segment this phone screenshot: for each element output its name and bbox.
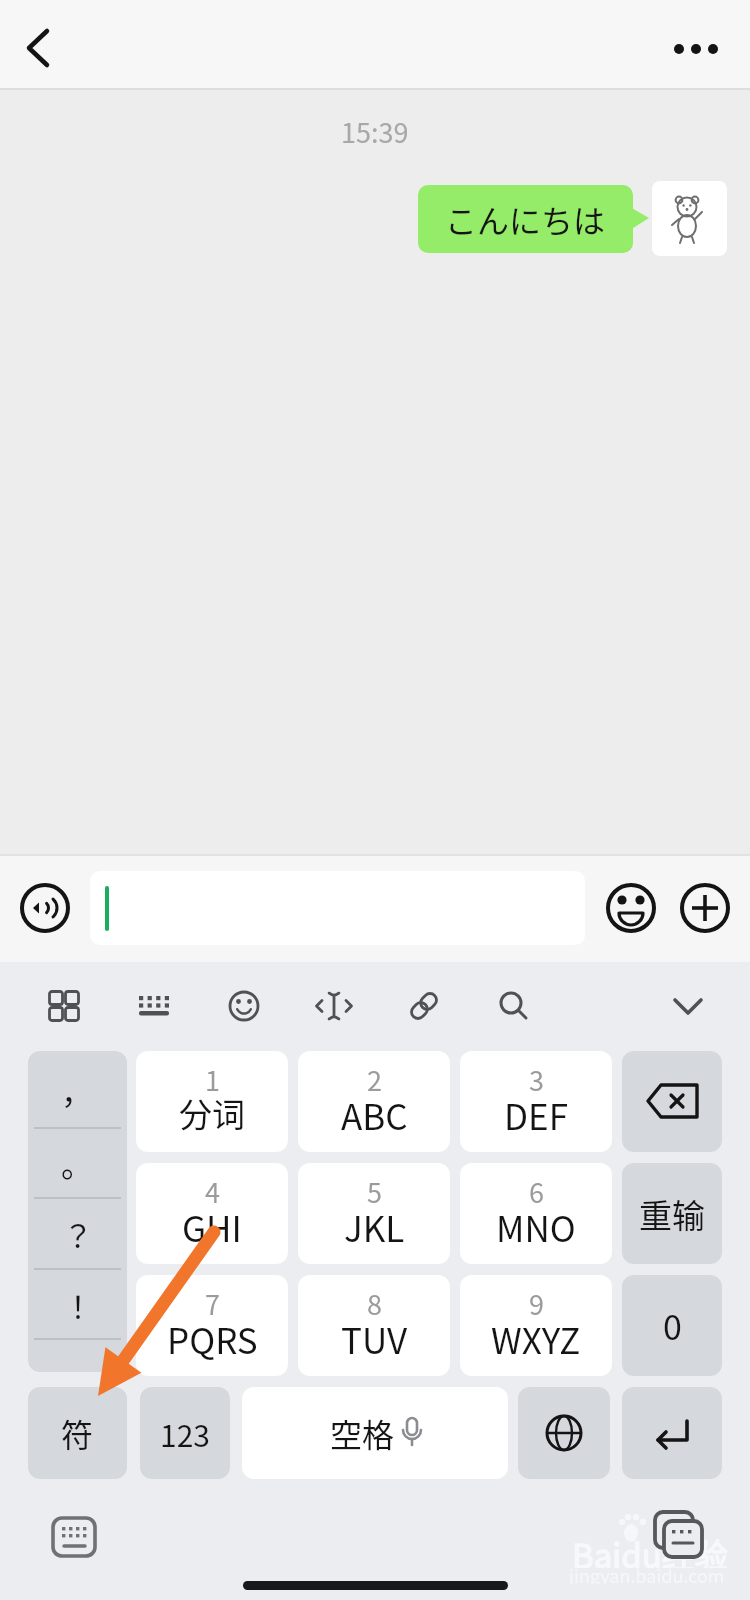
staticText: 15:39 — [341, 112, 409, 151]
staticText: 2 — [367, 1060, 382, 1096]
button[interactable] — [40, 1505, 110, 1569]
button[interactable] — [298, 1163, 450, 1264]
button[interactable] — [394, 976, 454, 1036]
button[interactable] — [10, 20, 70, 76]
staticText: こんにちは — [445, 196, 606, 242]
staticText: 8 — [367, 1284, 382, 1320]
button[interactable] — [298, 1275, 450, 1376]
staticText: 123 — [160, 1412, 210, 1455]
button[interactable] — [28, 1051, 127, 1372]
button[interactable] — [242, 1387, 508, 1479]
button[interactable]: 重输 — [622, 1163, 722, 1264]
staticText: ？ — [63, 1212, 93, 1255]
button[interactable] — [484, 976, 544, 1036]
button[interactable] — [34, 976, 94, 1036]
button[interactable] — [136, 1163, 288, 1264]
button[interactable] — [622, 1387, 722, 1479]
button[interactable] — [214, 976, 274, 1036]
staticText: 5 — [367, 1172, 382, 1208]
staticText: 9 — [529, 1284, 544, 1320]
button[interactable] — [652, 181, 727, 256]
button[interactable]: 123 — [140, 1387, 230, 1479]
staticText: 符 — [61, 1410, 94, 1456]
staticText: 7 — [205, 1284, 220, 1320]
button[interactable] — [460, 1163, 612, 1264]
button[interactable] — [136, 1275, 288, 1376]
staticText: ！ — [63, 1283, 93, 1326]
staticText: DEF — [504, 1089, 569, 1137]
button[interactable] — [658, 976, 718, 1036]
button[interactable]: 0 — [622, 1275, 722, 1376]
staticText: 6 — [529, 1172, 544, 1208]
staticText: MNO — [496, 1201, 576, 1249]
button[interactable] — [622, 1051, 722, 1152]
staticText: 重输 — [639, 1190, 705, 1238]
staticText: WXYZ — [491, 1313, 581, 1361]
staticText: 3 — [529, 1060, 544, 1096]
button[interactable] — [660, 21, 732, 77]
staticText: ， — [61, 1067, 94, 1113]
button[interactable] — [136, 1051, 288, 1152]
staticText: jingyan.baidu.com — [569, 1562, 725, 1584]
staticText: Baidu经验 — [572, 1530, 728, 1568]
button[interactable] — [606, 883, 656, 933]
button[interactable]: こんにちは — [418, 185, 633, 253]
button[interactable] — [20, 883, 70, 933]
button[interactable] — [298, 1051, 450, 1152]
staticText: 1 — [205, 1060, 220, 1096]
staticText: 0 — [663, 1301, 682, 1350]
button[interactable] — [460, 1051, 612, 1152]
staticText: 。 — [61, 1140, 94, 1186]
staticText: 4 — [205, 1172, 220, 1208]
button[interactable] — [124, 976, 184, 1036]
staticText: JKL — [344, 1201, 405, 1249]
button[interactable] — [645, 1500, 715, 1570]
button[interactable] — [90, 871, 585, 945]
button[interactable] — [304, 976, 364, 1036]
staticText: 空格 — [330, 1410, 395, 1456]
button[interactable] — [518, 1387, 610, 1479]
staticText: ABC — [341, 1089, 408, 1137]
staticText: GHI — [182, 1201, 242, 1249]
staticText: PQRS — [167, 1313, 258, 1361]
button[interactable] — [680, 883, 730, 933]
staticText: TUV — [341, 1313, 408, 1361]
staticText: 分词 — [179, 1089, 245, 1137]
button[interactable] — [460, 1275, 612, 1376]
button[interactable]: 符 — [28, 1387, 127, 1479]
